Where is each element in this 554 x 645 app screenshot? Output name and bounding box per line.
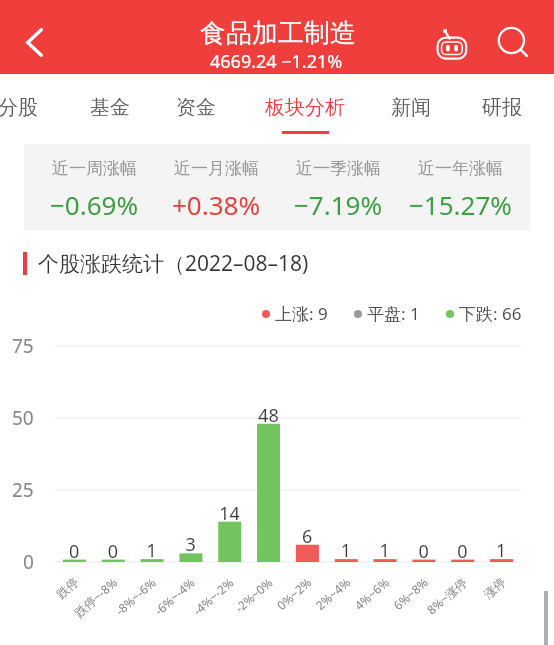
staticText: +0.38% [172,187,261,222]
staticText: 新闻 [391,95,431,120]
button[interactable]: Voice assistant [429,19,475,65]
button[interactable]: 新闻 [387,76,434,134]
button[interactable]: Search [490,20,536,66]
staticText: 板块分析 [265,95,345,120]
button[interactable]: Back [11,19,57,65]
staticText: 近一年涨幅 [418,158,503,179]
staticText: 研报 [482,95,522,120]
button[interactable]: 研报 [478,76,525,134]
staticText: 平盘: 1 [367,302,420,325]
button[interactable]: 资金 [172,76,219,134]
staticText: −0.69% [50,187,139,222]
staticText: 下跌: 66 [459,302,522,325]
staticText: 4669.24 −1.21% [210,49,343,74]
staticText: −7.19% [294,187,383,222]
staticText: 近一月涨幅 [174,158,259,179]
staticText: 近一周涨幅 [52,158,137,179]
staticText: 个股涨跌统计（2022–08–18) [38,249,309,278]
staticText: 基金 [90,95,130,120]
staticText: −15.27% [409,187,512,222]
staticText: 食品加工制造 [200,17,356,50]
button[interactable]: 基金 [86,76,133,134]
staticText: 成分股 [0,95,38,120]
staticText: 资金 [176,95,216,120]
button[interactable]: 成分股 [0,76,38,134]
button[interactable]: 板块分析 [265,76,345,134]
staticText: 上涨: 9 [275,302,328,325]
staticText: 近一季涨幅 [296,158,381,179]
